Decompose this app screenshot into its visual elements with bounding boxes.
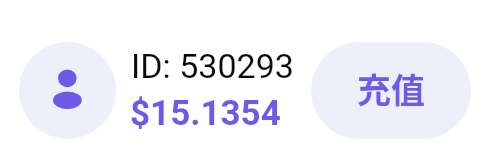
staticText: $15.1354 — [130, 93, 281, 134]
staticText: ID: 530293 — [131, 46, 294, 86]
button[interactable]: Profile avatar — [19, 42, 116, 139]
staticText: 充值 — [357, 64, 425, 113]
button[interactable]: 充值 — [311, 42, 471, 139]
